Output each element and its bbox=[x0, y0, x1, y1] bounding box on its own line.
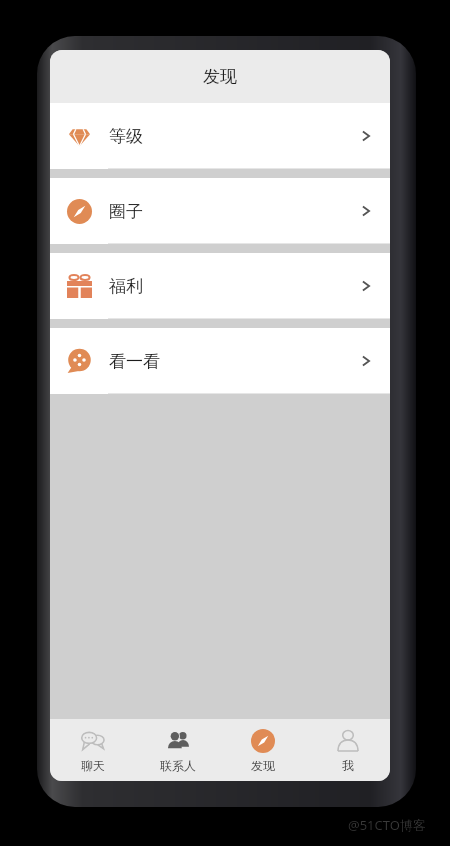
button[interactable]: 等级 bbox=[50, 103, 390, 169]
other: 联系人 bbox=[166, 729, 190, 753]
staticText: 我 bbox=[342, 758, 354, 773]
staticText: 看一看 bbox=[109, 351, 160, 372]
button[interactable]: 看一看 bbox=[50, 328, 390, 394]
other: Open bbox=[359, 129, 373, 143]
button[interactable]: 联系人 bbox=[135, 719, 220, 781]
other: 聊天 bbox=[81, 729, 105, 753]
staticText: 发现 bbox=[251, 758, 275, 773]
staticText: 联系人 bbox=[160, 758, 196, 773]
other: 发现 bbox=[251, 729, 275, 753]
other: Open bbox=[359, 279, 373, 293]
button[interactable]: 福利 bbox=[50, 253, 390, 319]
staticText: 圈子 bbox=[109, 201, 143, 222]
button[interactable]: 发现 bbox=[220, 719, 305, 781]
button[interactable]: 聊天 bbox=[50, 719, 135, 781]
staticText: 聊天 bbox=[81, 758, 105, 773]
other: Open bbox=[359, 204, 373, 218]
staticText: @51CTO博客 bbox=[348, 816, 426, 834]
button[interactable]: 圈子 bbox=[50, 178, 390, 244]
other: Open bbox=[359, 354, 373, 368]
other: 福利 bbox=[67, 274, 92, 299]
other: 看一看 bbox=[67, 349, 91, 373]
staticText: 等级 bbox=[109, 126, 143, 147]
other: 我 bbox=[336, 729, 360, 753]
other: 圈子 bbox=[67, 199, 92, 224]
button[interactable]: 我 bbox=[305, 719, 390, 781]
staticText: 福利 bbox=[109, 276, 143, 297]
staticText: 发现 bbox=[203, 66, 237, 87]
other: 等级 bbox=[68, 125, 91, 148]
